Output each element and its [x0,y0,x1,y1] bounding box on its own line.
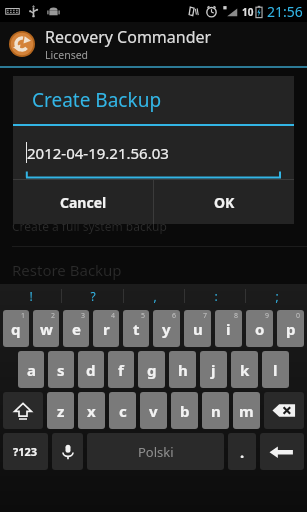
button[interactable]: g [138,351,165,388]
button[interactable]: , [124,284,185,307]
staticText: m [239,401,254,421]
staticText: h [178,360,188,380]
button[interactable]: Cancel [13,180,153,224]
staticText: k [240,360,250,380]
button[interactable]: d [78,351,104,388]
staticText: z [57,401,65,421]
staticText: g [147,360,157,380]
staticText: Restore Backup [12,260,122,280]
staticText: 6 [172,311,177,321]
staticText: d [86,360,96,380]
staticText: 8 [234,311,239,321]
button[interactable]: ?123 [3,433,48,470]
button[interactable]: k [231,351,258,388]
staticText: o [255,319,265,339]
staticText: i [226,319,231,339]
staticText: Licensed [45,48,89,62]
button[interactable]: w [33,310,59,347]
staticText: c [119,401,127,421]
button[interactable]: Recovery Commander [0,22,307,66]
button[interactable]: m [233,392,260,429]
staticText: t [133,319,140,339]
button[interactable]: ! [0,284,62,307]
button[interactable]: Shift [3,392,43,429]
button[interactable]: : [185,284,246,307]
staticText: l [273,360,278,380]
staticText: r [103,319,110,339]
staticText: 4 [111,311,116,321]
staticText: 10 [242,5,254,19]
button[interactable]: ? [62,284,124,307]
button[interactable]: . [228,433,256,470]
staticText: 1 [21,311,26,321]
button[interactable]: c [109,392,136,429]
staticText: b [180,401,190,421]
staticText: 7 [203,311,208,321]
staticText: : [214,288,218,304]
button[interactable]: v [140,392,167,429]
button[interactable]: i [215,310,242,347]
staticText: Create a full system backup [12,218,167,234]
staticText: 0 [296,311,301,321]
button[interactable]: Polski [87,433,224,470]
button[interactable]: z [47,392,74,429]
staticText: ; [275,288,279,304]
staticText: Recovery Commander [45,26,212,48]
staticText: f [118,360,124,380]
staticText: 9 [265,311,270,321]
button[interactable]: 2012-04-19.21.56.03 [26,126,281,179]
button[interactable]: Backspace [264,392,304,429]
button[interactable]: p [277,310,304,347]
button[interactable]: y [153,310,180,347]
button[interactable]: e [63,310,89,347]
button[interactable]: l [262,351,289,388]
staticText: q [11,319,21,339]
staticText: Create Backup [32,87,162,113]
button[interactable]: x [78,392,105,429]
button[interactable]: OK [154,180,294,224]
button[interactable]: j [200,351,227,388]
staticText: s [57,360,65,380]
staticText: j [211,360,216,380]
button[interactable]: b [171,392,198,429]
button[interactable]: u [184,310,211,347]
staticText: ! [29,288,33,304]
button[interactable]: h [169,351,196,388]
staticText: 2012-04-19.21.56.03 [27,143,169,163]
button[interactable]: o [246,310,273,347]
button[interactable]: f [108,351,134,388]
staticText: Cancel [60,193,107,212]
staticText: a [27,360,36,380]
button[interactable]: Enter [260,433,304,470]
staticText: 21:56 [267,2,303,21]
staticText: 2 [51,311,56,321]
button[interactable]: ; [246,284,307,307]
staticText: . [240,442,245,462]
staticText: n [211,401,221,421]
button[interactable]: Voice input [52,433,83,470]
staticText: OK [214,193,235,212]
button[interactable]: s [48,351,74,388]
staticText: w [40,319,53,339]
staticText: , [153,288,157,304]
button[interactable]: a [18,351,44,388]
staticText: p [286,319,296,339]
staticText: y [162,319,171,339]
staticText: x [87,401,96,421]
button[interactable]: r [93,310,119,347]
staticText: u [193,319,203,339]
staticText: v [149,401,158,421]
staticText: e [72,319,81,339]
button[interactable]: t [123,310,149,347]
staticText: 5 [141,311,146,321]
staticText: ? [90,288,96,304]
staticText: Polski [138,443,174,461]
staticText: 3 [81,311,86,321]
button[interactable]: q [3,310,29,347]
button[interactable]: n [202,392,229,429]
staticText: ?123 [13,444,38,459]
